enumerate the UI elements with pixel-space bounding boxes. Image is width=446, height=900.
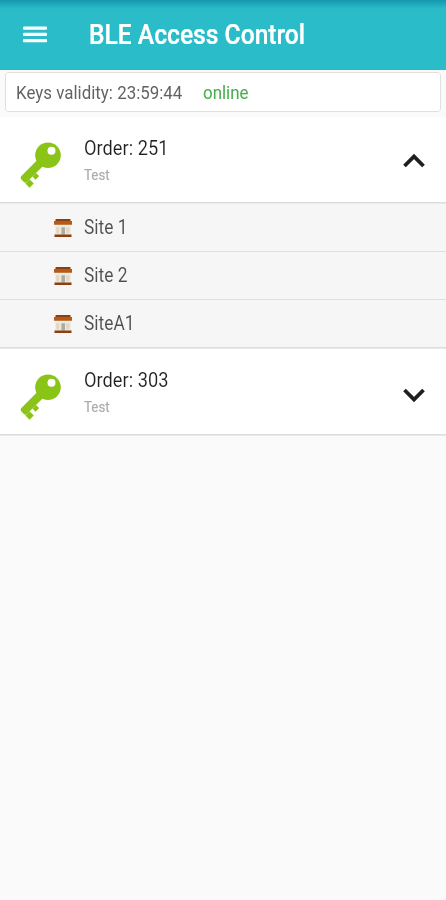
staticText: Site 1 [84, 216, 128, 239]
staticText: Site 2 [84, 264, 128, 287]
button[interactable]: Order: 251 [0, 117, 446, 202]
button[interactable]: Order: 303 [0, 349, 446, 434]
button[interactable]: Site 2 [0, 252, 446, 299]
staticText: SiteA1 [84, 312, 135, 335]
staticText: BLE Access Control [89, 19, 306, 51]
staticText: Test [84, 398, 110, 416]
staticText: Order: 251 [84, 136, 168, 160]
button[interactable] [0, 0, 70, 70]
button[interactable]: Site 1 [0, 204, 446, 251]
staticText: online [203, 81, 249, 103]
button[interactable]: SiteA1 [0, 300, 446, 347]
staticText: Order: 303 [84, 368, 168, 392]
staticText: Test [84, 166, 110, 184]
staticText: Keys validity: 23:59:44 [16, 81, 182, 103]
